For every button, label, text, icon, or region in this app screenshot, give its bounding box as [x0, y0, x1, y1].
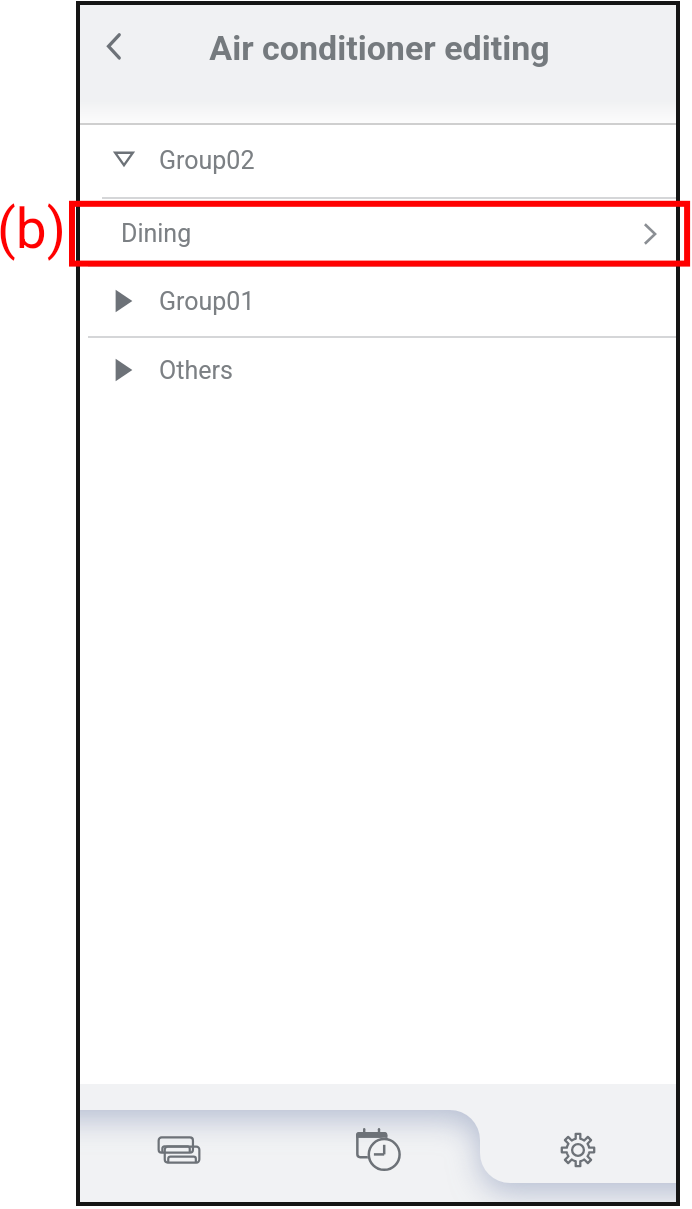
staticText: Dining: [121, 219, 192, 248]
button[interactable]: Back: [85, 12, 145, 72]
button[interactable]: Group01: [80, 267, 676, 336]
staticText: Group02: [159, 146, 255, 175]
button[interactable]: Air conditioner: [80, 1084, 278, 1202]
button[interactable]: Group02: [80, 123, 676, 197]
staticText: Others: [159, 356, 233, 385]
button[interactable]: Settings: [478, 1084, 676, 1202]
staticText: (b): [0, 197, 66, 261]
staticText: Air conditioner editing: [209, 28, 550, 68]
button[interactable]: Schedule: [278, 1084, 478, 1202]
staticText: Group01: [159, 287, 255, 316]
button[interactable]: Dining: [80, 199, 676, 265]
button[interactable]: Others: [80, 338, 676, 403]
